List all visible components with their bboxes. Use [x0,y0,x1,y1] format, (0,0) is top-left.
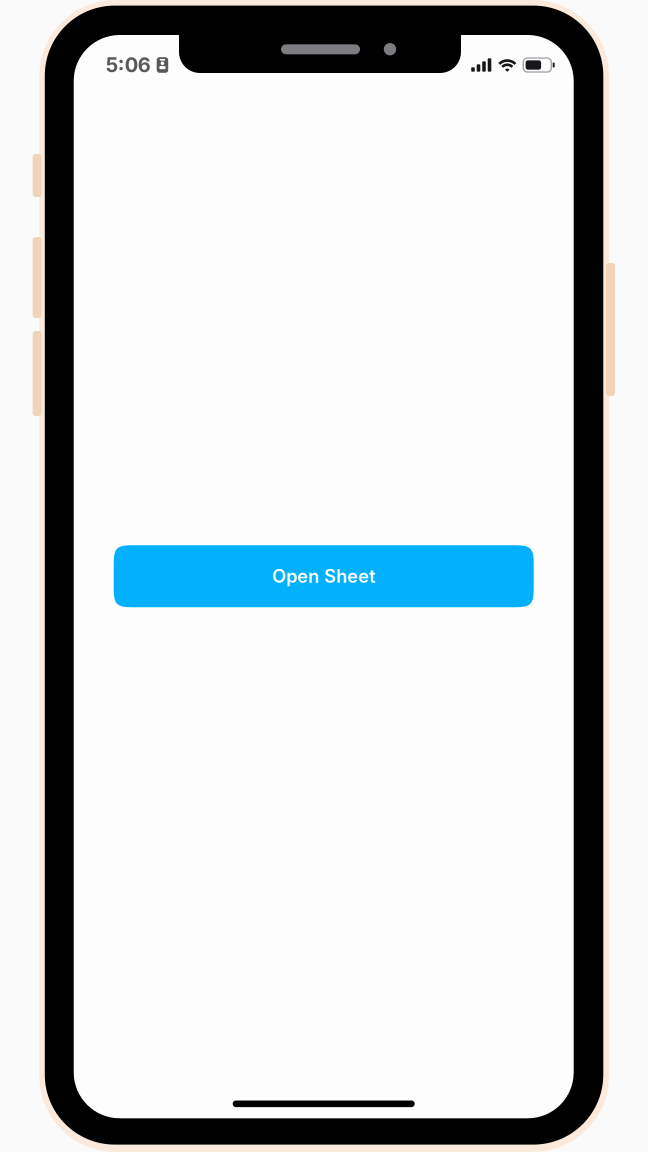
button[interactable]: Open Sheet [114,545,534,607]
staticText: Open Sheet [272,565,375,587]
staticText: 5:06 [106,53,151,77]
